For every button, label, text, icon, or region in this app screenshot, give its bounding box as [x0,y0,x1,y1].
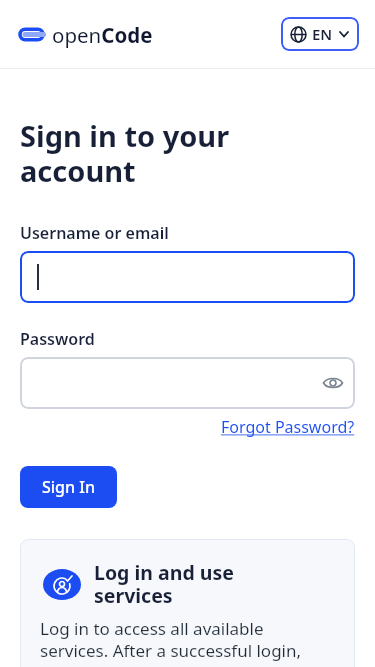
staticText: Sign In [42,476,95,498]
staticText: Password [20,328,95,350]
button[interactable]: Sign In [20,466,117,508]
button[interactable]: EN [281,17,359,51]
button[interactable] [20,251,355,303]
staticText: openCode [52,21,153,49]
staticText: Sign in to your account [20,116,230,191]
button[interactable] [20,357,355,409]
button[interactable]: Forgot Password? [221,416,355,438]
staticText: Log in and use services [94,559,234,609]
staticText: Username or email [20,222,169,244]
staticText: Log in to access all available services.… [40,617,302,667]
staticText: EN [312,24,333,44]
button[interactable]: Log in and use services [20,539,355,667]
button[interactable]: openCode [16,20,153,49]
